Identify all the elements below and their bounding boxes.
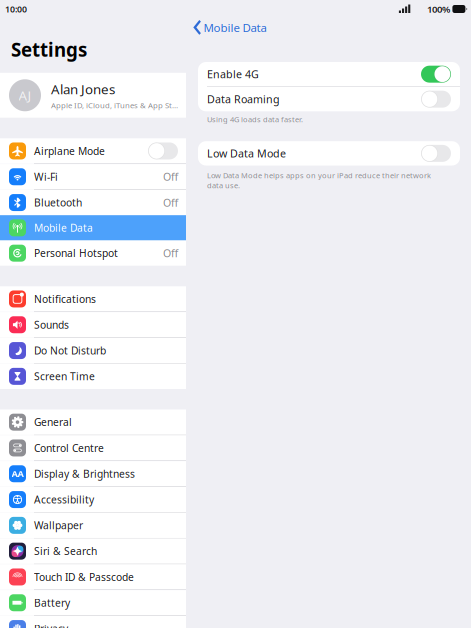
staticText: Do Not Disturb [34, 344, 106, 357]
staticText: Wi-Fi [34, 170, 58, 183]
staticText: Enable 4G [207, 67, 259, 81]
staticText: Siri & Search [34, 544, 97, 558]
staticText: Sounds [34, 318, 69, 331]
staticText: Screen Time [34, 369, 95, 383]
button[interactable]: Mobile Data [0, 215, 186, 240]
button[interactable]: Data Roaming [198, 87, 460, 111]
button[interactable]: Low Data Mode [198, 141, 460, 165]
button[interactable]: Bluetooth [0, 190, 186, 215]
button[interactable]: Mobile Data [186, 18, 471, 37]
staticText: AA [11, 467, 23, 480]
staticText: Using 4G loads data faster. [207, 114, 303, 124]
staticText: Battery [34, 596, 70, 609]
staticText: Off [163, 246, 178, 260]
staticText: Data Roaming [207, 92, 280, 106]
button[interactable]: General [0, 409, 186, 435]
button[interactable]: Do Not Disturb [0, 338, 186, 363]
staticText: Accessibility [34, 493, 94, 506]
staticText: Alan Jones [51, 80, 115, 98]
button[interactable]: Airplane Mode [0, 138, 186, 164]
button[interactable]: Battery [0, 590, 186, 615]
button[interactable]: Wallpaper [0, 513, 186, 538]
staticText: Airplane Mode [34, 144, 105, 158]
button[interactable]: Screen Time [0, 364, 186, 389]
staticText: Settings [11, 37, 87, 62]
staticText: 10:00 [5, 3, 27, 15]
staticText: Display & Brightness [34, 467, 135, 480]
button[interactable]: Privacy [0, 616, 186, 628]
staticText: Off [163, 170, 178, 184]
staticText: Off [163, 195, 178, 209]
button[interactable]: Wi-Fi [0, 164, 186, 189]
staticText: 100% [427, 3, 450, 15]
button[interactable]: Sounds [0, 312, 186, 337]
staticText: Mobile Data [203, 20, 266, 35]
button[interactable]: AA [0, 461, 186, 486]
staticText: AJ [18, 86, 31, 104]
staticText: Control Centre [34, 441, 104, 455]
button[interactable]: AJ [0, 73, 186, 118]
staticText: Privacy [34, 622, 68, 628]
staticText: Touch ID & Passcode [34, 570, 134, 584]
button[interactable]: Personal Hotspot [0, 240, 186, 266]
button[interactable]: Siri & Search [0, 538, 186, 564]
staticText: Wallpaper [34, 518, 83, 532]
staticText: Apple ID, iCloud, iTunes & App St… [51, 100, 178, 110]
staticText: Bluetooth [34, 196, 82, 209]
button[interactable]: Notifications [0, 286, 186, 312]
staticText: Notifications [34, 292, 96, 306]
staticText: Low Data Mode [207, 146, 286, 160]
staticText: Low Data Mode helps apps on your iPad re… [207, 170, 431, 190]
staticText: General [34, 415, 72, 429]
staticText: Personal Hotspot [34, 246, 118, 260]
staticText: Mobile Data [34, 221, 93, 235]
button[interactable]: Control Centre [0, 435, 186, 461]
button[interactable]: Enable 4G [198, 62, 460, 86]
button[interactable]: Accessibility [0, 487, 186, 512]
button[interactable]: Touch ID & Passcode [0, 564, 186, 590]
